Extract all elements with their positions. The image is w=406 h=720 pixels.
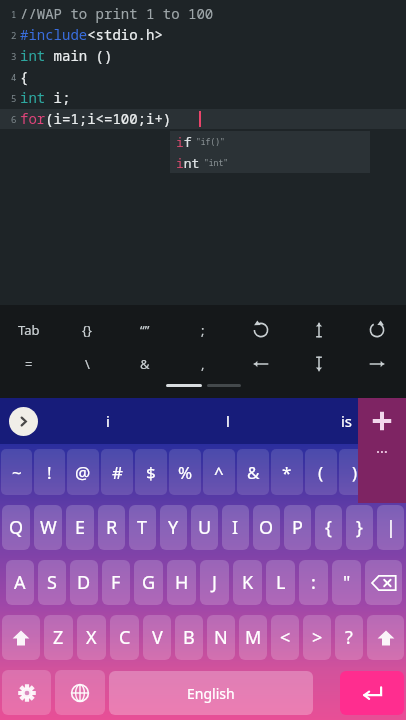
button[interactable]: Y — [160, 505, 187, 550]
button[interactable]: T — [129, 505, 156, 550]
staticText: l — [226, 411, 230, 431]
button[interactable]: W — [34, 505, 62, 550]
button[interactable]: B — [175, 615, 203, 660]
other: Move up — [309, 320, 329, 340]
staticText: int main () — [20, 46, 113, 65]
button[interactable]: I — [222, 505, 249, 550]
button[interactable]: Add clip — [358, 398, 406, 503]
staticText: English — [187, 684, 235, 703]
staticText: D — [77, 570, 91, 595]
button[interactable]: { — [315, 505, 342, 550]
button[interactable]: J — [200, 560, 229, 605]
button[interactable]: Settings — [2, 670, 51, 715]
button[interactable]: Tab — [0, 313, 58, 347]
button[interactable]: Enter — [340, 671, 404, 715]
button[interactable]: X — [77, 615, 106, 660]
staticText: M — [245, 625, 262, 650]
button[interactable]: R — [98, 505, 125, 550]
button[interactable]: % — [169, 449, 201, 495]
button[interactable]: K — [233, 560, 262, 605]
staticText: E — [75, 515, 86, 540]
button[interactable]: ^ — [203, 449, 235, 495]
button[interactable]: “” — [116, 313, 174, 347]
staticText: 5 — [11, 92, 17, 104]
button[interactable]: > — [303, 615, 331, 660]
button[interactable]: = — [0, 347, 58, 381]
button[interactable]: ? — [335, 615, 363, 660]
button[interactable]: S — [38, 560, 66, 605]
button[interactable]: i — [48, 398, 168, 444]
staticText: #include<stdio.h> — [20, 25, 163, 44]
button[interactable]: _ — [373, 449, 405, 495]
button[interactable]: Undo — [232, 313, 290, 347]
button[interactable]: E — [66, 505, 94, 550]
button[interactable]: F — [102, 560, 130, 605]
button[interactable]: D — [70, 560, 98, 605]
staticText: int i; — [20, 88, 71, 107]
button[interactable]: : — [299, 560, 328, 605]
button[interactable]: $ — [135, 449, 167, 495]
button[interactable]: < — [271, 615, 299, 660]
button[interactable]: Change language — [55, 670, 105, 715]
button[interactable]: N — [207, 615, 235, 660]
button[interactable]: H — [167, 560, 196, 605]
button[interactable]: O — [253, 505, 280, 550]
button[interactable]: Z — [44, 615, 73, 660]
button[interactable]: ! — [34, 449, 65, 495]
staticText: & — [247, 461, 260, 484]
button[interactable]: ~ — [1, 449, 32, 495]
staticText: F — [111, 570, 121, 595]
staticText: { — [325, 515, 332, 540]
button[interactable]: U — [191, 505, 218, 550]
button[interactable]: Shift — [367, 615, 404, 660]
staticText: H — [175, 570, 189, 595]
staticText: for(i=1;i<=100;i+) — [20, 109, 172, 128]
button[interactable]: Move right — [348, 347, 406, 381]
button[interactable]: Move up — [290, 313, 348, 347]
button[interactable]: L — [266, 560, 295, 605]
staticText: V — [152, 625, 163, 650]
button[interactable]: | — [377, 505, 404, 550]
button[interactable]: Move left — [232, 347, 290, 381]
button[interactable]: Redo — [348, 313, 406, 347]
button[interactable]: M — [239, 615, 267, 660]
button[interactable]: Backspace — [365, 560, 402, 605]
button[interactable]: ) — [339, 449, 371, 495]
button[interactable]: C — [110, 615, 139, 660]
button[interactable]: {} — [58, 313, 116, 347]
button[interactable]: & — [116, 347, 174, 381]
button[interactable]: Expand suggestions — [9, 407, 38, 436]
button[interactable]: A — [6, 560, 34, 605]
button[interactable]: if — [170, 131, 370, 152]
button[interactable]: P — [284, 505, 311, 550]
button[interactable]: * — [271, 449, 303, 495]
button[interactable]: G — [134, 560, 163, 605]
button[interactable]: int — [170, 152, 370, 173]
staticText: ! — [47, 461, 52, 484]
staticText: … — [376, 437, 388, 457]
button[interactable]: is — [287, 398, 406, 444]
button[interactable]: English — [109, 671, 313, 715]
button[interactable]: } — [346, 505, 373, 550]
other: Move right — [367, 354, 387, 374]
button[interactable]: ; — [174, 313, 232, 347]
button[interactable]: Shift — [2, 615, 40, 660]
staticText: ( — [318, 461, 324, 484]
button[interactable]: @ — [67, 449, 99, 495]
button[interactable]: " — [332, 560, 361, 605]
button[interactable]: Q — [2, 505, 30, 550]
staticText: ? — [345, 625, 353, 650]
staticText: 3 — [11, 50, 17, 62]
button[interactable]: , — [174, 347, 232, 381]
button[interactable]: & — [237, 449, 269, 495]
staticText: K — [242, 570, 254, 595]
button[interactable]: # — [101, 449, 133, 495]
button[interactable]: V — [143, 615, 171, 660]
button[interactable]: \ — [58, 347, 116, 381]
button[interactable]: l — [168, 398, 287, 444]
staticText: int — [176, 154, 200, 172]
staticText: R — [106, 515, 118, 540]
button[interactable]: Move down — [290, 347, 348, 381]
button[interactable]: ( — [305, 449, 337, 495]
staticText: \ — [85, 355, 90, 373]
